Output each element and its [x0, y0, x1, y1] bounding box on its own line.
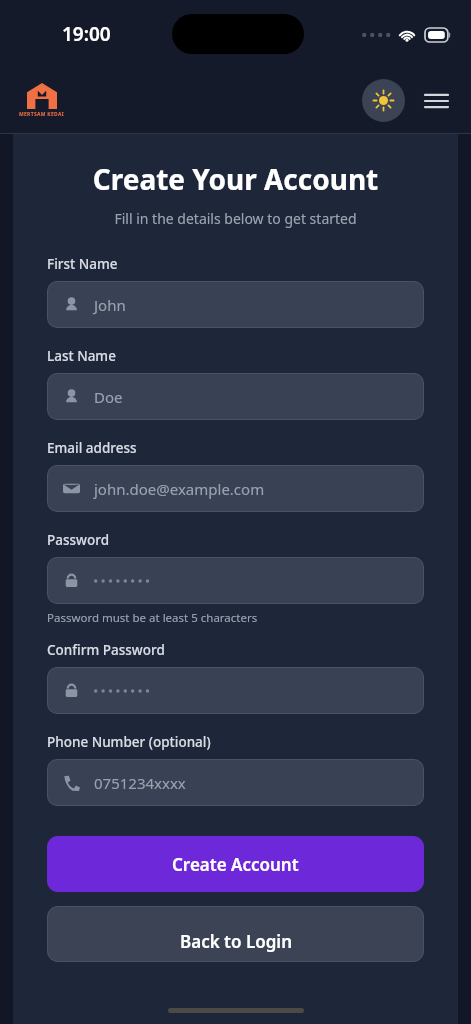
staticText: John: [94, 295, 126, 315]
staticText: Create Your Account: [47, 160, 424, 198]
staticText: Fill in the details below to get started: [47, 209, 424, 228]
staticText: Phone Number (optional): [47, 733, 211, 751]
staticText: Back to Login: [180, 930, 292, 953]
button[interactable]: Back to Login: [47, 906, 424, 962]
staticText: Create Account: [172, 853, 299, 876]
button[interactable]: Doe: [47, 373, 424, 420]
staticText: First Name: [47, 255, 118, 273]
button[interactable]: Create Account: [47, 836, 424, 892]
staticText: Doe: [94, 387, 123, 407]
staticText: MERTSAM KEDAI: [19, 111, 64, 118]
button[interactable]: 0751234xxxx: [47, 759, 424, 806]
staticText: Password must be at least 5 characters: [47, 610, 258, 626]
button[interactable]: [47, 557, 424, 604]
button[interactable]: [47, 667, 424, 714]
button[interactable]: Menu: [419, 84, 453, 118]
staticText: Last Name: [47, 347, 116, 365]
staticText: Password: [47, 531, 110, 549]
button[interactable]: Toggle theme: [362, 79, 405, 122]
staticText: 0751234xxxx: [94, 773, 186, 793]
staticText: Email address: [47, 439, 137, 457]
staticText: 19:00: [62, 21, 111, 47]
staticText: john.doe@example.com: [94, 479, 265, 499]
button[interactable]: John: [47, 281, 424, 328]
button[interactable]: john.doe@example.com: [47, 465, 424, 512]
staticText: Confirm Password: [47, 641, 165, 659]
